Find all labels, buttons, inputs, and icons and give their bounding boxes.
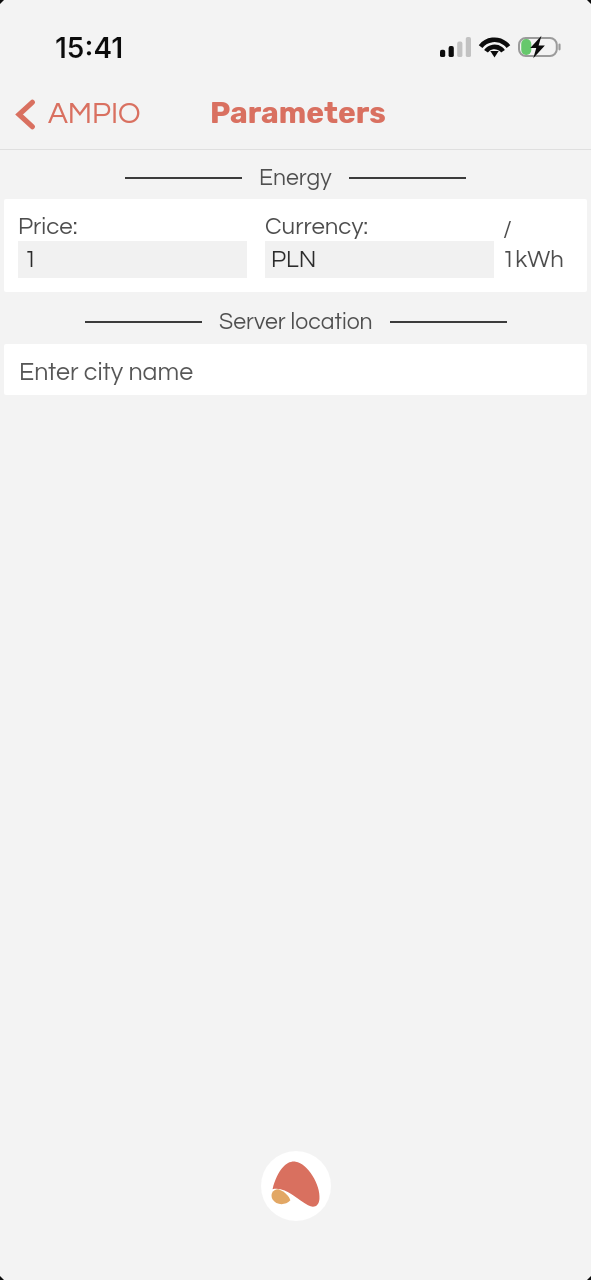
- staticText: 1: [24, 247, 38, 272]
- staticText: Parameters: [210, 95, 386, 131]
- staticText: Currency:: [265, 214, 369, 239]
- staticText: Price:: [18, 214, 78, 239]
- button[interactable]: 1: [18, 241, 247, 278]
- staticText: /: [503, 217, 512, 242]
- staticText: AMPIO: [48, 98, 141, 129]
- other: Back: [17, 101, 34, 128]
- button[interactable]: PLN: [265, 241, 494, 278]
- staticText: Enter city name: [19, 359, 194, 385]
- staticText: 15:41: [55, 31, 123, 65]
- staticText: Server location: [219, 310, 373, 334]
- staticText: Energy: [259, 166, 332, 190]
- button[interactable]: Back: [11, 93, 147, 136]
- staticText: PLN: [271, 247, 317, 272]
- button[interactable]: Enter city name: [4, 344, 587, 395]
- other: Ampio logo: [261, 1151, 331, 1221]
- staticText: 1kWh: [502, 247, 564, 272]
